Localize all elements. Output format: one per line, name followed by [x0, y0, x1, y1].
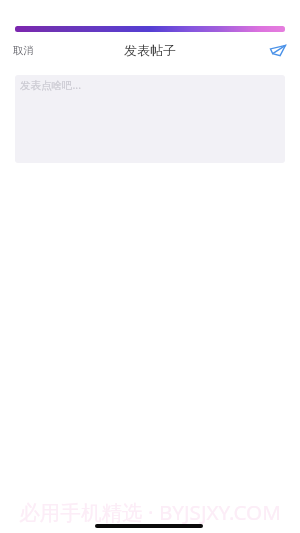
button[interactable]: 取消 — [0, 37, 47, 63]
button[interactable]: 发表点啥吧... — [15, 75, 285, 163]
staticText: 取消 — [13, 44, 34, 57]
staticText: 必用手机精选 · BYJSJXY.COM — [19, 498, 281, 526]
staticText: 发表帖子 — [124, 42, 176, 58]
staticText: 发表点啥吧... — [20, 78, 81, 92]
button[interactable]: Send — [256, 37, 300, 63]
